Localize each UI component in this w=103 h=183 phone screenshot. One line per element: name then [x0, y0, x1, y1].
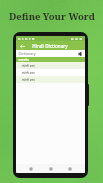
button[interactable]: Recents — [65, 164, 75, 173]
staticText: अंग्रेजी शब्द — [21, 78, 35, 82]
staticText: Define Your Word — [9, 10, 95, 23]
staticText: Hindi Dictionary — [32, 43, 68, 49]
staticText: शब्दकोश — [18, 58, 29, 62]
button[interactable]: Back — [26, 164, 36, 173]
staticText: Dictionary — [18, 51, 36, 56]
button[interactable]: Back — [18, 42, 26, 50]
button[interactable]: अंग्रेजी शब्द — [16, 76, 85, 83]
button[interactable]: Home — [46, 164, 56, 173]
staticText: अंग्रेजी शब्द — [21, 71, 35, 75]
button[interactable]: Dictionary — [16, 50, 85, 57]
button[interactable]: अंग्रेजी शब्द — [16, 69, 85, 76]
button[interactable]: Speak — [77, 51, 83, 57]
staticText: अंग्रेजी शब्द — [21, 64, 35, 68]
button[interactable]: अंग्रेजी शब्द — [16, 62, 85, 69]
button[interactable]: शब्दकोश — [16, 57, 85, 62]
